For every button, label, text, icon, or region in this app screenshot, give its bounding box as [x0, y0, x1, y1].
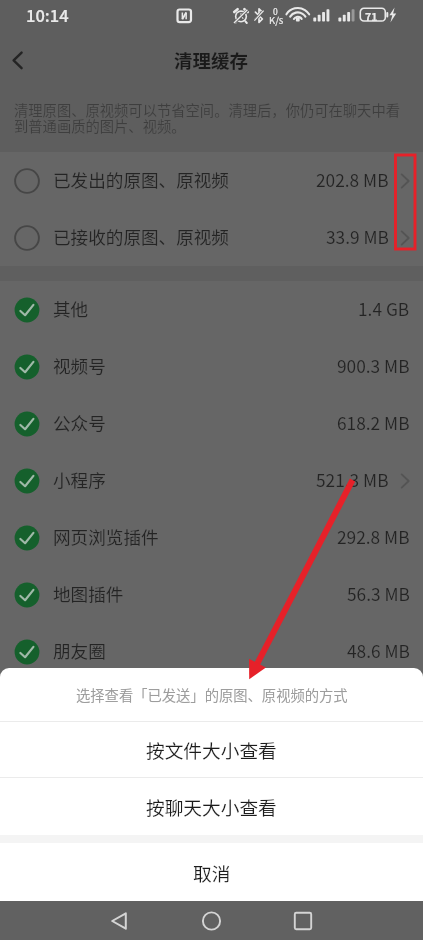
staticText: 视频号: [53, 353, 106, 378]
button[interactable]: 地图插件: [0, 566, 423, 623]
staticText: 清理原图、原视频可以节省空间。清理后，你仍可在聊天中看到普通画质的图片、视频。: [14, 99, 409, 137]
staticText: 公众号: [53, 410, 106, 435]
staticText: 56.3 MB: [347, 581, 410, 606]
button[interactable]: Back: [0, 901, 141, 940]
staticText: 选择查看「已发送」的原图、原视频的方式: [76, 684, 348, 705]
staticText: 清理缓存: [174, 47, 249, 74]
staticText: 按文件大小查看: [146, 736, 277, 763]
staticText: 292.8 MB: [337, 524, 410, 549]
staticText: 48.6 MB: [347, 638, 410, 663]
staticText: 618.2 MB: [337, 410, 410, 435]
staticText: 取消: [193, 859, 231, 886]
button[interactable]: Back: [0, 36, 42, 86]
button[interactable]: 网页浏览插件: [0, 509, 423, 566]
staticText: K/s: [269, 13, 284, 27]
staticText: 900.3 MB: [337, 353, 410, 378]
staticText: 已发出的原图、原视频: [53, 167, 229, 192]
button[interactable]: 已发出的原图、原视频: [0, 152, 423, 209]
button[interactable]: Home: [141, 901, 282, 940]
button[interactable]: 取消: [0, 843, 423, 901]
staticText: 0: [273, 5, 278, 17]
button[interactable]: 公众号: [0, 395, 423, 452]
staticText: 小程序: [53, 467, 106, 492]
staticText: 已接收的原图、原视频: [53, 224, 229, 249]
button[interactable]: 其他: [0, 281, 423, 338]
button[interactable]: Recents: [282, 901, 423, 940]
staticText: 地图插件: [53, 581, 124, 606]
button[interactable]: 按文件大小查看: [0, 722, 423, 777]
staticText: 朋友圈: [53, 638, 106, 663]
button[interactable]: 视频号: [0, 338, 423, 395]
staticText: 10:14: [26, 3, 69, 27]
button[interactable]: 按聊天大小查看: [0, 778, 423, 835]
staticText: 其他: [53, 296, 89, 321]
staticText: 33.9 MB: [326, 224, 389, 249]
button[interactable]: 朋友圈: [0, 623, 423, 680]
staticText: 按聊天大小查看: [146, 793, 277, 820]
staticText: 521.3 MB: [316, 467, 389, 492]
button[interactable]: 小程序: [0, 452, 423, 509]
staticText: 1.4 GB: [358, 296, 410, 321]
staticText: 71: [365, 9, 378, 24]
button[interactable]: 已接收的原图、原视频: [0, 209, 423, 266]
staticText: 202.8 MB: [316, 167, 389, 192]
staticText: 网页浏览插件: [53, 524, 159, 549]
